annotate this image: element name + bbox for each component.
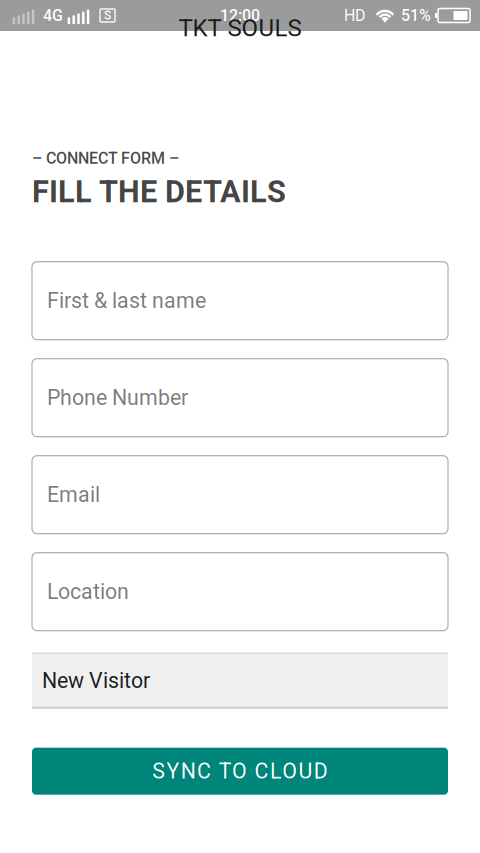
button[interactable]: Phone Number: [32, 359, 448, 437]
staticText: Location: [47, 579, 129, 604]
button[interactable]: New Visitor: [32, 653, 448, 709]
staticText: New Visitor: [42, 668, 150, 693]
staticText: 4G: [43, 6, 63, 25]
button[interactable]: Email: [32, 456, 448, 534]
staticText: Phone Number: [47, 385, 188, 410]
staticText: SYNC TO CLOUD: [152, 759, 328, 784]
staticText: FILL THE DETAILS: [32, 174, 286, 210]
staticText: 51%: [401, 6, 431, 25]
staticText: HD: [344, 6, 366, 25]
button[interactable]: Location: [32, 553, 448, 631]
staticText: 12:00: [220, 6, 260, 25]
staticText: TKT SOULS: [178, 14, 301, 42]
staticText: Email: [47, 482, 100, 507]
staticText: – CONNECT FORM –: [32, 149, 179, 168]
staticText: First & last name: [47, 288, 206, 313]
staticText: S: [104, 8, 111, 23]
button[interactable]: SYNC TO CLOUD: [32, 748, 448, 795]
button[interactable]: First & last name: [32, 262, 448, 340]
